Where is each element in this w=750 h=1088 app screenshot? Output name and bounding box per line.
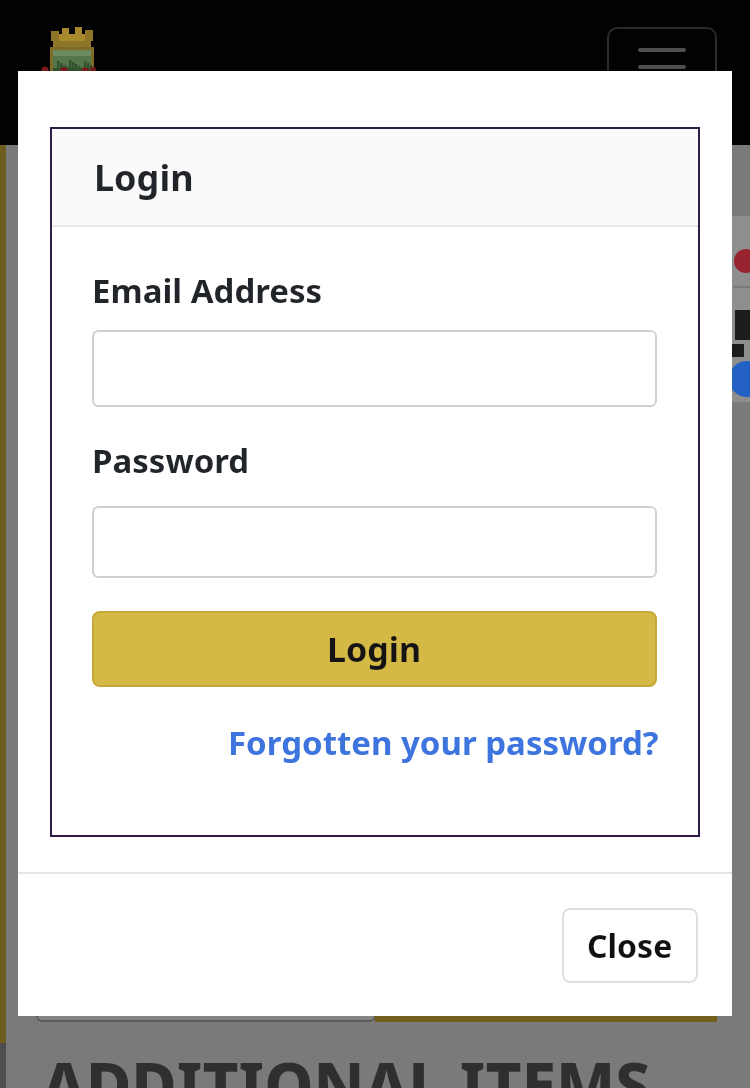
staticText: Login — [94, 153, 194, 202]
staticText: Password — [92, 438, 250, 483]
button[interactable]: Login — [92, 611, 657, 687]
button[interactable] — [92, 506, 657, 578]
button[interactable] — [607, 27, 717, 105]
staticText: ADDITIONAL ITEMS — [42, 1042, 651, 1088]
staticText: Email Address — [92, 268, 323, 313]
button[interactable]: Close — [562, 908, 698, 983]
button[interactable] — [92, 330, 657, 407]
staticText: Close — [587, 924, 673, 968]
staticText: Login — [327, 626, 422, 672]
button[interactable]: Forgotten your password? — [228, 720, 659, 765]
